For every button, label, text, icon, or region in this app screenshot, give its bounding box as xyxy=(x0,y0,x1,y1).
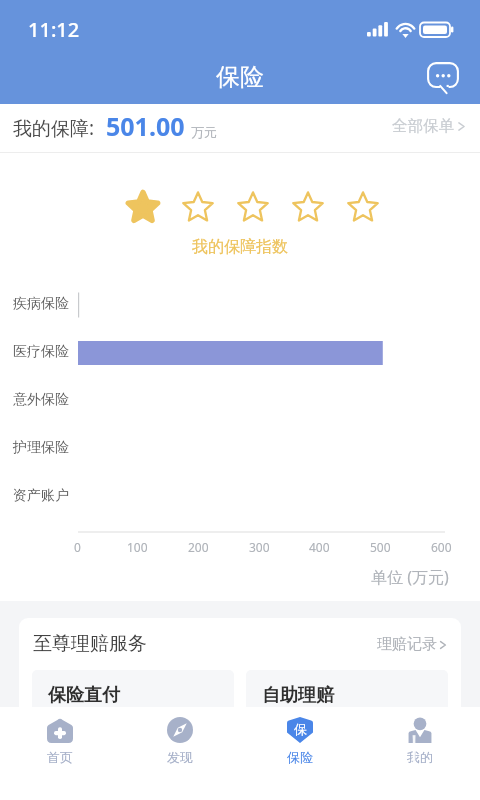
button[interactable]: 我的保障: xyxy=(0,104,480,153)
button[interactable]: 我的 xyxy=(360,707,480,800)
staticText: 11:12 xyxy=(28,16,80,43)
button[interactable]: 首页 xyxy=(0,707,120,800)
staticText: 资产账户 xyxy=(13,487,69,505)
button[interactable]: 理赔记录 xyxy=(377,635,449,654)
staticText: 我的保障指数 xyxy=(192,237,288,257)
staticText: 自助理赔 xyxy=(262,684,334,707)
staticText: 400 xyxy=(309,539,330,555)
staticText: 0 xyxy=(74,539,81,555)
staticText: 万元 xyxy=(191,124,217,140)
staticText: 保险直付 xyxy=(48,684,120,707)
staticText: 理赔记录 xyxy=(377,635,437,654)
staticText: 保 xyxy=(294,721,307,737)
staticText: 保险 xyxy=(287,749,313,765)
staticText: 我的 xyxy=(407,749,433,765)
staticText: 首页 xyxy=(47,749,73,765)
staticText: 500 xyxy=(370,539,391,555)
staticText: 100 xyxy=(127,539,148,555)
staticText: 疾病保险 xyxy=(13,295,69,313)
staticText: 7YZ.COM xyxy=(363,761,463,788)
staticText: 300 xyxy=(249,539,270,555)
button[interactable]: 保 xyxy=(240,707,360,800)
button[interactable]: 消息 xyxy=(422,57,466,101)
staticText: 意外保险 xyxy=(13,391,69,409)
staticText: 单位 (万元) xyxy=(371,566,449,588)
staticText: 全部保单 xyxy=(392,116,454,136)
button[interactable]: 保险直付 xyxy=(32,670,234,760)
staticText: 护理保险 xyxy=(13,439,69,457)
staticText: 医疗保险 xyxy=(13,343,69,361)
staticText: 200 xyxy=(188,539,209,555)
staticText: 至尊理赔服务 xyxy=(33,632,147,656)
staticText: 600 xyxy=(431,539,452,555)
staticText: 七叶子 xyxy=(352,731,466,769)
staticText: 保险 xyxy=(216,62,264,92)
staticText: 我的保障: xyxy=(13,115,95,141)
button[interactable]: 自助理赔 xyxy=(246,670,448,760)
staticText: 501.00 xyxy=(106,109,185,143)
staticText: 发现 xyxy=(167,749,193,765)
button[interactable]: 发现 xyxy=(120,707,240,800)
